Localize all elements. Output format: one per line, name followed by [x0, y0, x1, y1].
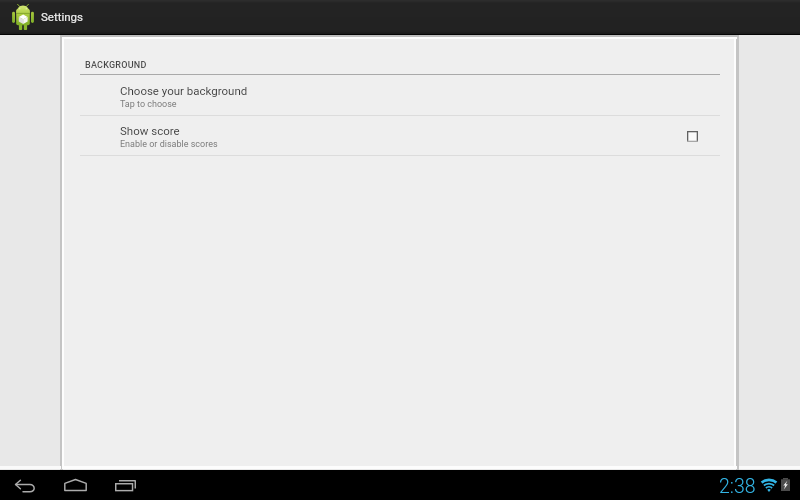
button[interactable]: Show score toggle: [680, 124, 704, 148]
staticText: Choose your background: [120, 84, 248, 97]
button[interactable]: Recent apps: [107, 474, 145, 497]
staticText: BACKGROUND: [85, 60, 147, 71]
staticText: Settings: [41, 10, 83, 23]
staticText: Enable or disable scores: [120, 139, 218, 150]
button[interactable]: Choose your background: [62, 75, 738, 115]
button[interactable]: Back: [8, 474, 42, 497]
staticText: Tap to choose: [120, 99, 177, 110]
button[interactable]: Home: [56, 474, 94, 497]
button[interactable]: Show score: [62, 116, 738, 155]
staticText: Show score: [120, 124, 180, 137]
staticText: 2:38: [719, 475, 756, 498]
